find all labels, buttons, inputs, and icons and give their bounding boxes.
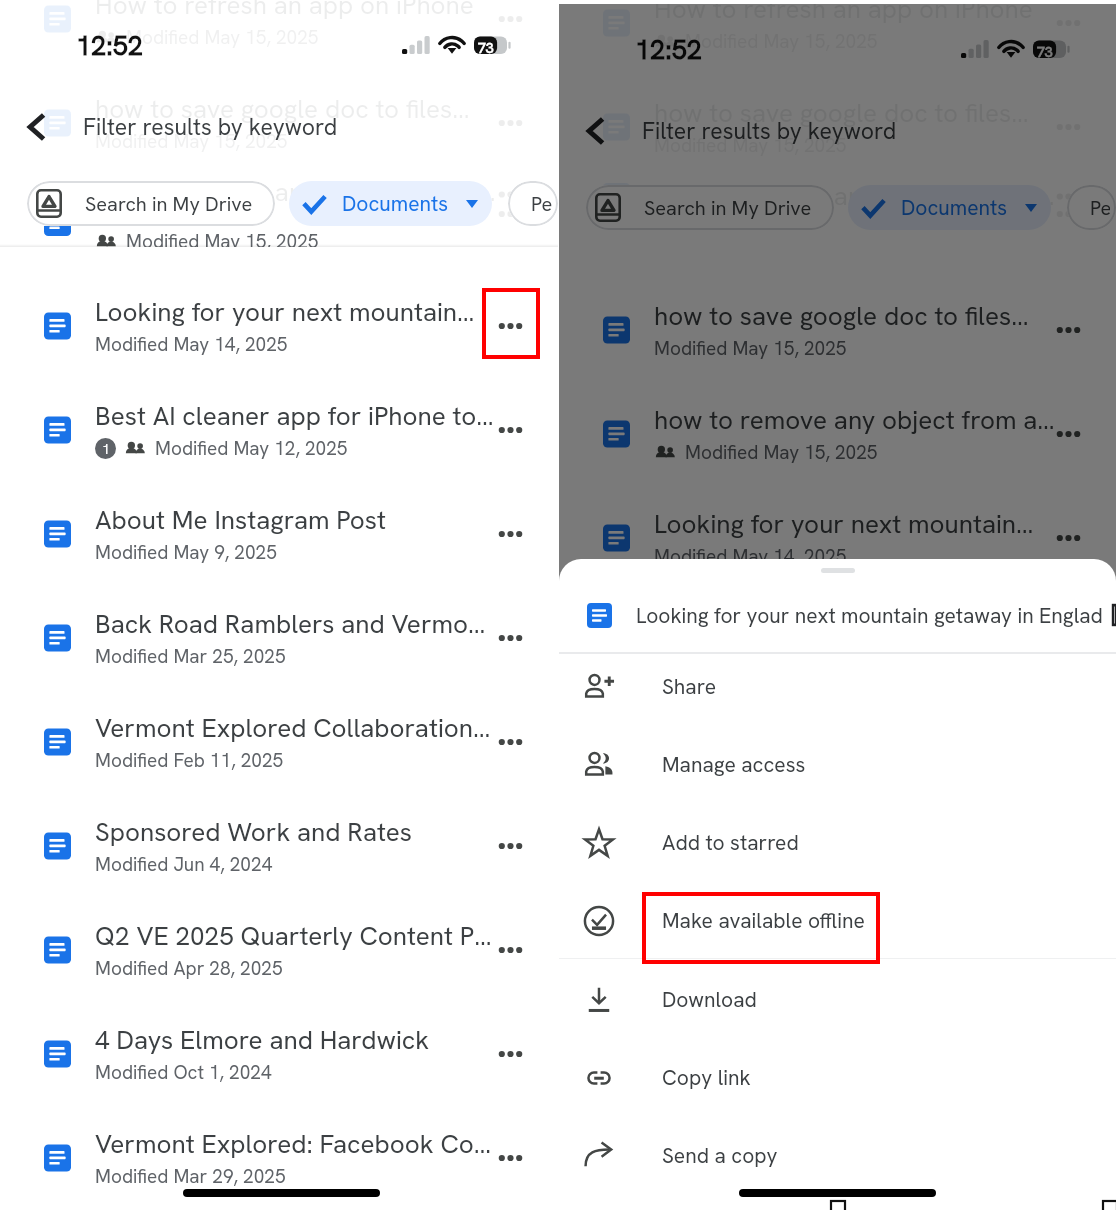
staticText: Modified May 9, 2025 [95,540,277,565]
button[interactable]: Looking for your next mountain getaway i… [559,578,1116,652]
staticText: how to remove any object from a… [654,179,1056,213]
staticText: Modified Apr 28, 2025 [95,956,283,981]
button[interactable]: Sponsored Work and Rates [0,794,558,898]
button[interactable]: how to save google doc to files… [0,71,558,175]
button[interactable]: More options [1021,4,1116,75]
staticText: Modified Jun 4, 2024 [95,852,273,877]
button[interactable]: More options [463,482,558,586]
button[interactable]: Looking for your next mountain… [0,274,558,378]
button[interactable]: Search in My Drive [586,185,834,230]
button[interactable]: Download [559,960,1116,1038]
staticText: Modified May 15, 2025 [654,336,847,361]
staticText: Manage access [662,751,806,778]
staticText: Search in My Drive [85,191,253,217]
staticText: Copy link [662,1064,751,1091]
staticText: Modified Feb 11, 2025 [95,748,284,773]
staticText: People [531,191,552,217]
staticText: 73 [478,39,494,57]
button[interactable]: Back [572,107,620,155]
button[interactable]: how to remove any object from a… [0,171,558,247]
button[interactable]: More options [463,898,558,1002]
button[interactable]: More options [463,378,558,482]
button[interactable]: how to save google doc to files… [559,75,1116,179]
staticText: Filter results by keyword [83,112,338,142]
button[interactable]: Vermont Explored: Facebook Co… [0,1106,558,1210]
staticText: how to remove any object from a… [654,403,1056,437]
button[interactable]: More options [463,1002,558,1106]
staticText: People [1090,195,1110,221]
button[interactable]: 4 Days Elmore and Hardwick [0,1002,558,1106]
staticText: About Me Instagram Post [95,503,498,537]
button[interactable]: More options [1021,278,1116,382]
staticText: how to save google doc to files… [95,92,498,126]
button[interactable]: Share [559,647,1116,725]
button[interactable]: Q2 VE 2025 Quarterly Content P… [0,898,558,1002]
button[interactable]: More options [1021,179,1116,214]
button[interactable]: People [508,181,558,226]
button[interactable]: About Me Instagram Post [0,482,558,586]
button[interactable]: People [1067,185,1116,230]
button[interactable]: Manage access [559,725,1116,803]
button[interactable]: Copy link [559,1038,1116,1116]
staticText: Modified May 15, 2025 [95,129,288,154]
staticText: Modified May 15, 2025 [654,133,847,158]
staticText: 12:52 [76,28,143,63]
staticText: Filter results by keyword [642,116,897,146]
staticText: Modified May 15, 2025 [126,229,319,247]
staticText: Vermont Explored: Facebook Co… [95,1127,498,1161]
button[interactable]: More options [463,274,558,378]
button[interactable]: More options [1021,486,1116,590]
button[interactable]: how to remove any object from a… [559,382,1116,486]
button[interactable]: how to remove any object from a… [0,175,558,214]
other: Select [1113,605,1116,625]
staticText: Modified Oct 1, 2024 [95,1060,272,1085]
button[interactable]: How to refresh an app on iPhone [0,0,558,71]
staticText: How to refresh an app on iPhone [95,0,498,22]
button[interactable]: Back Road Ramblers and Vermo… [0,586,558,690]
staticText: Looking for your next mountain… [95,295,498,329]
staticText: Modified May 15, 2025 [685,440,878,465]
button[interactable]: Make available offline [559,881,1116,959]
staticText: Share [662,673,716,700]
staticText: Download [662,986,757,1013]
staticText: Vermont Explored Collaboration… [95,711,498,745]
button[interactable]: More options [463,690,558,794]
button[interactable]: Documents [848,185,1051,230]
staticText: How to refresh an app on iPhone [654,4,1056,26]
staticText: Modified May 14, 2025 [654,544,847,569]
staticText: Modified May 15, 2025 [685,29,878,54]
button[interactable]: More options [463,1106,558,1210]
button[interactable]: Documents [289,181,492,226]
button[interactable]: More options [463,794,558,898]
staticText: Modified May 12, 2025 [155,436,348,461]
button[interactable]: how to remove any object from a… [559,179,1116,214]
staticText: Search in My Drive [644,195,812,221]
staticText: 12:52 [635,32,702,67]
staticText: Looking for your next mountain… [654,507,1056,541]
button[interactable]: Vermont Explored Collaboration… [0,690,558,794]
staticText: how to remove any object from a… [95,192,498,226]
button[interactable]: More options [1021,382,1116,486]
button[interactable]: How to refresh an app on iPhone [559,4,1116,75]
staticText: Modified Mar 29, 2025 [95,1164,286,1189]
staticText: Send a copy [662,1142,778,1169]
button[interactable]: Back [13,103,61,151]
button[interactable]: Add to starred [559,803,1116,881]
staticText: Documents [901,194,1008,221]
staticText: Sponsored Work and Rates [95,815,498,849]
staticText: Modified May 14, 2025 [95,332,288,357]
button[interactable]: More options [463,586,558,690]
button[interactable]: Best AI cleaner app for iPhone to… [0,378,558,482]
button[interactable]: More options [463,175,558,214]
button[interactable]: Search in My Drive [27,181,275,226]
staticText: 73 [1037,43,1053,61]
staticText: Documents [342,190,449,217]
button[interactable]: More options [463,0,558,71]
button[interactable]: More options [463,171,558,247]
button[interactable]: how to save google doc to files… [559,278,1116,382]
staticText: Modified Mar 25, 2025 [95,644,286,669]
button[interactable]: Looking for your next mountain… [559,486,1116,590]
button[interactable]: Send a copy [559,1116,1116,1194]
